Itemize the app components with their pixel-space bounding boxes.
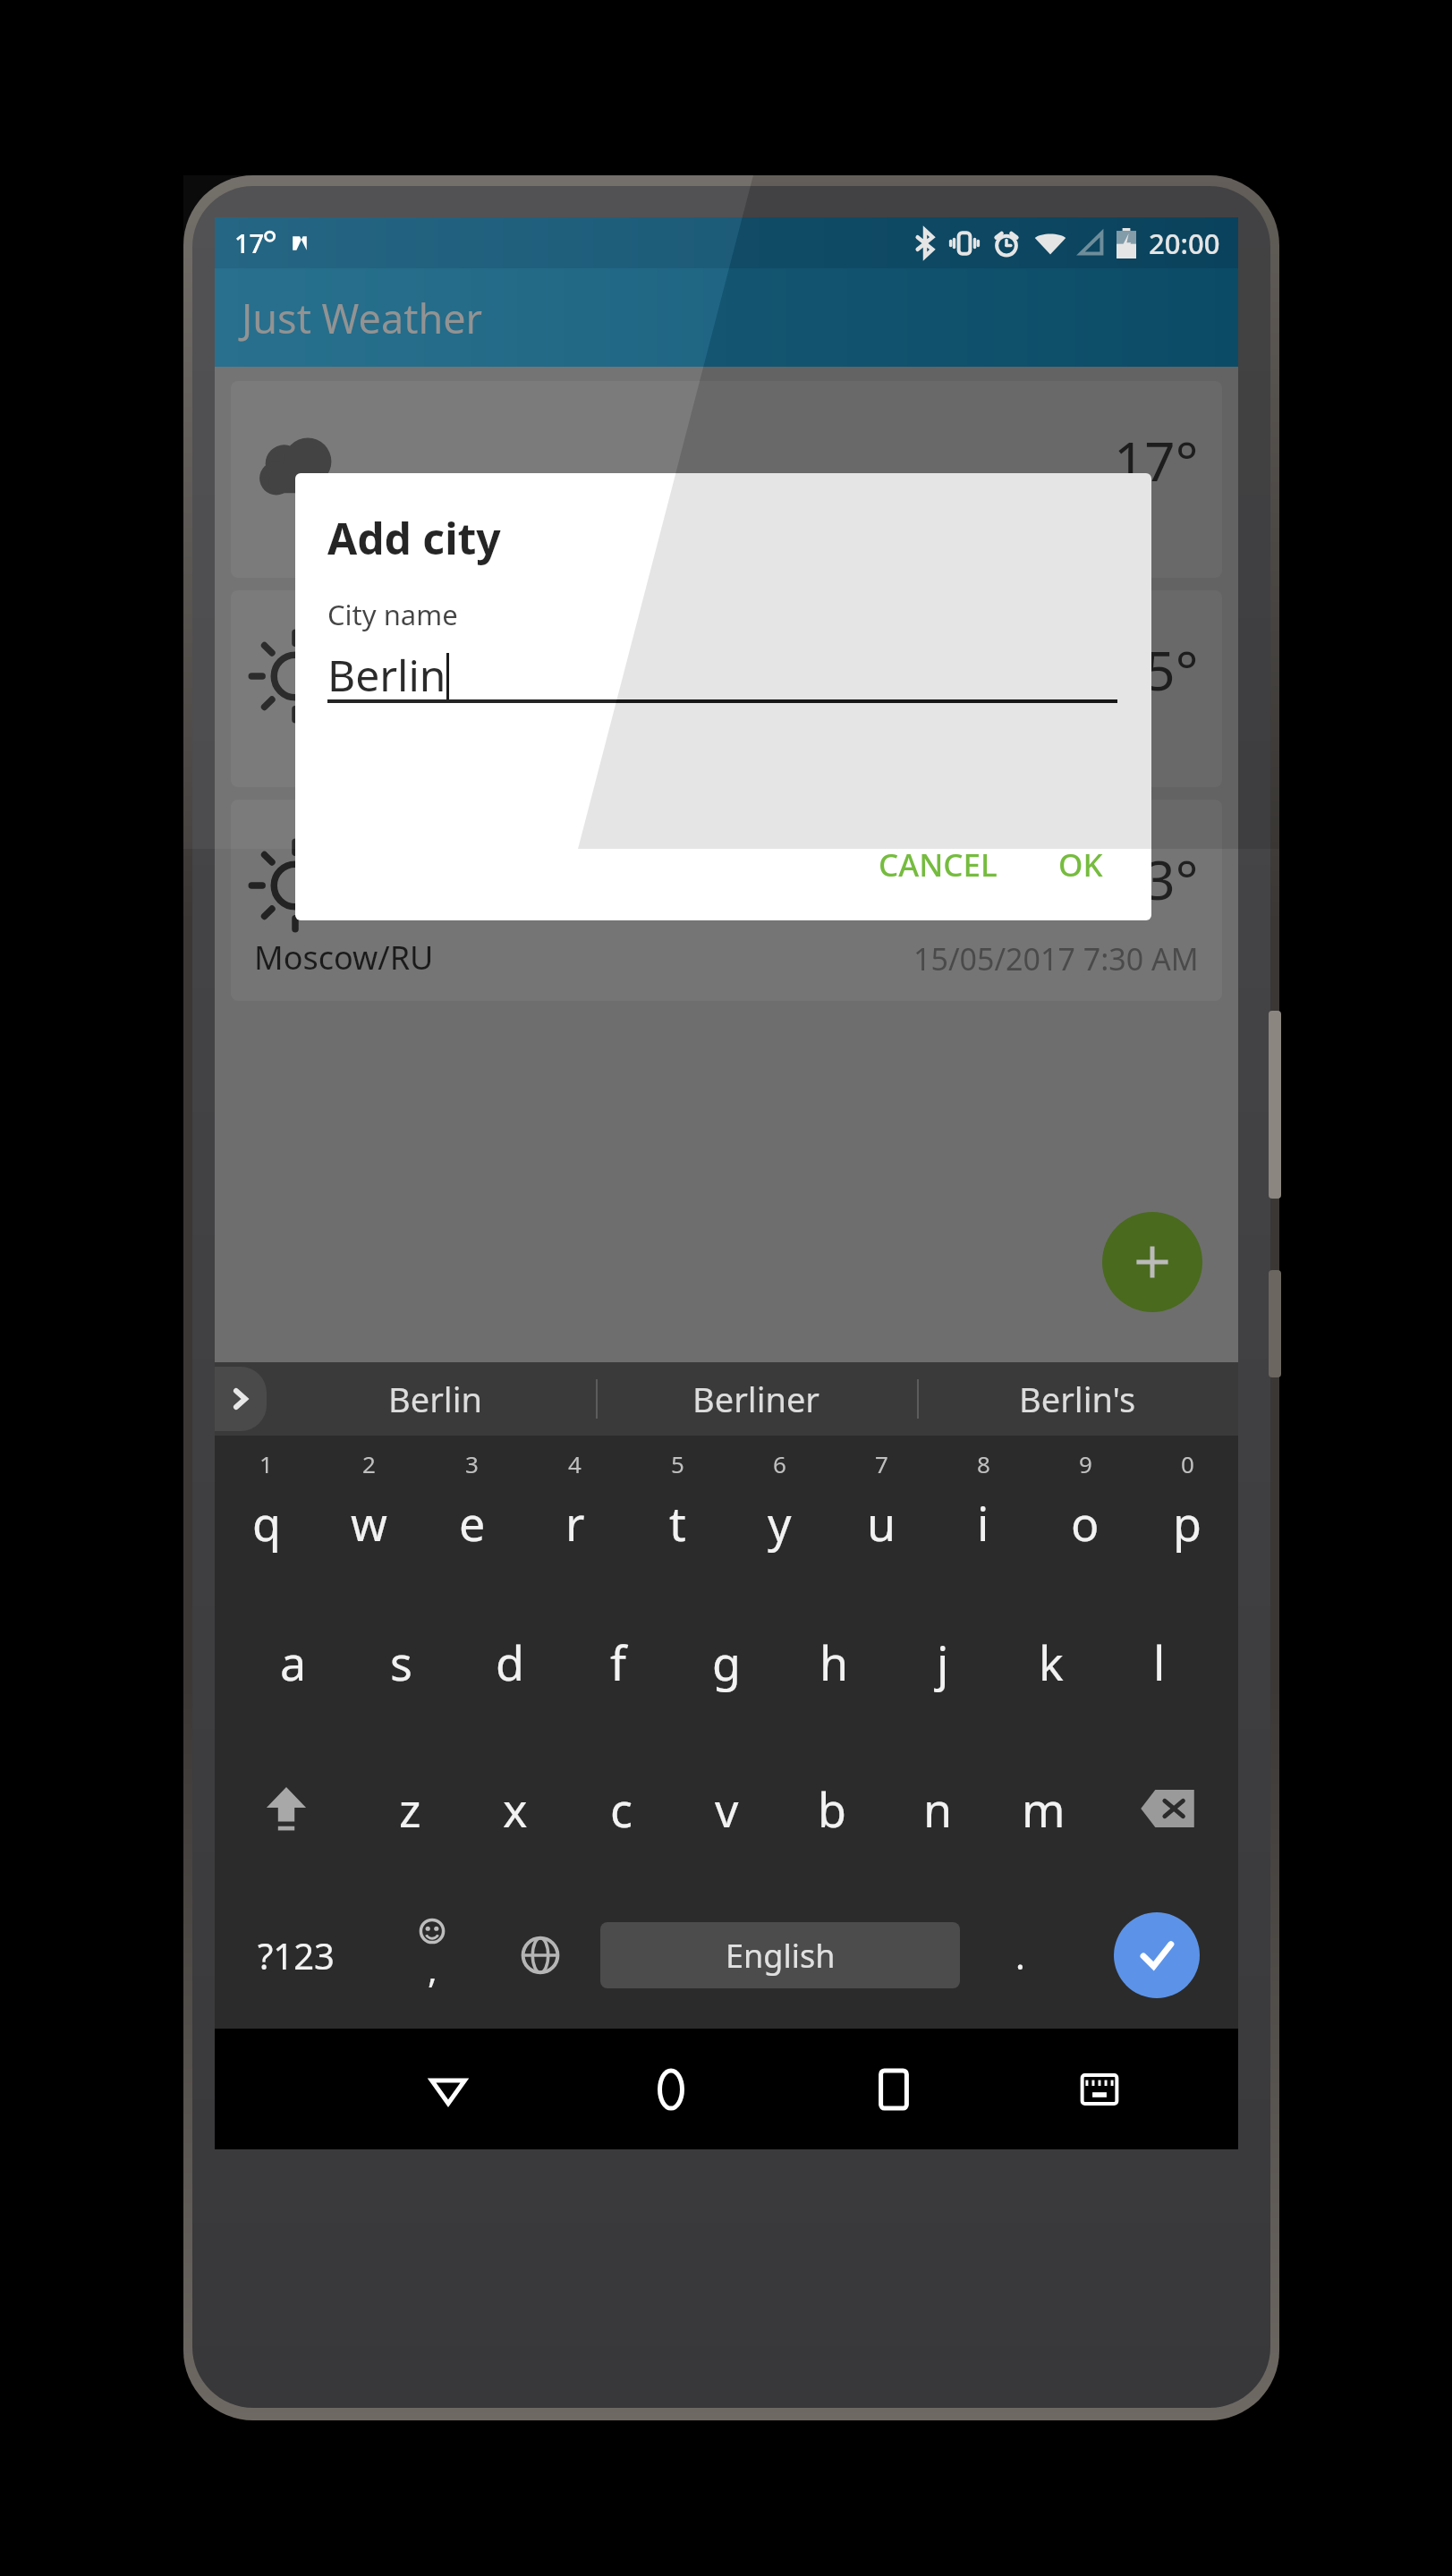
button[interactable]: 9 [1034,1441,1136,1589]
button[interactable]: n [885,1735,990,1882]
staticText: Add city [327,509,501,567]
staticText: Berlin [327,646,446,703]
button[interactable]: a [240,1589,347,1735]
button[interactable]: f [564,1589,672,1735]
staticText: e [459,1491,486,1555]
button[interactable]: 4 [523,1441,626,1589]
staticText: English [726,1934,836,1978]
button[interactable]: Home [559,2029,782,2149]
staticText: Berlin's [1019,1376,1136,1422]
staticText: 15° [1114,633,1199,707]
staticText: k [1039,1631,1064,1694]
button[interactable]: Add city [1102,1212,1202,1312]
button[interactable]: j [888,1589,997,1735]
staticText: f [610,1631,626,1694]
staticText: h [819,1631,849,1694]
staticText: Just Weather [242,291,483,345]
staticText: OK [1058,843,1103,886]
button[interactable]: 15° [231,590,1222,787]
staticText: t [669,1491,686,1555]
button[interactable]: z [357,1735,463,1882]
button[interactable]: 5 [626,1441,728,1589]
staticText: l [1153,1631,1166,1694]
button[interactable]: m [990,1735,1096,1882]
button[interactable]: Back [336,2029,559,2149]
staticText: p [1173,1491,1202,1555]
button[interactable]: OK [1042,833,1119,897]
staticText: 1 [259,1448,273,1479]
button[interactable]: Shift [215,1735,357,1882]
staticText: 5 [671,1448,684,1479]
button[interactable]: Berliner [596,1362,917,1436]
staticText: Moscow/RU [254,936,434,979]
staticText: 15/05/2017 7:30 AM [913,938,1199,979]
button[interactable]: 13° [231,800,1222,1001]
button[interactable]: Berlin [327,646,1117,703]
staticText: y [768,1491,792,1555]
staticText: s [390,1631,412,1694]
button[interactable]: Emoji and comma [378,1882,486,2029]
staticText: r [565,1491,585,1555]
button[interactable]: 0 [1136,1441,1238,1589]
button[interactable]: . [965,1882,1074,2029]
staticText: 17° [1114,424,1199,497]
staticText: n [923,1777,953,1841]
button[interactable]: 2 [318,1441,420,1589]
button[interactable]: b [779,1735,885,1882]
staticText: a [280,1631,307,1694]
staticText: 6 [773,1448,786,1479]
button[interactable]: s [347,1589,455,1735]
staticText: CANCEL [879,843,998,886]
button[interactable]: 6 [728,1441,830,1589]
button[interactable]: 8 [932,1441,1034,1589]
button[interactable]: Switch keyboard [1005,2029,1193,2149]
button[interactable]: Change language [486,1882,595,2029]
button[interactable]: v [674,1735,779,1882]
button[interactable]: Backspace [1096,1735,1238,1882]
staticText: 4 [568,1448,582,1479]
staticText: d [496,1631,524,1694]
staticText: u [867,1491,896,1555]
staticText: q [252,1491,281,1555]
button[interactable]: CANCEL [862,833,1014,897]
button[interactable]: h [780,1589,888,1735]
staticText: o [1071,1491,1100,1555]
staticText: c [610,1777,633,1841]
button[interactable]: Recent apps [782,2029,1005,2149]
staticText: 0 [1181,1448,1194,1479]
staticText: v [715,1777,739,1841]
button[interactable]: l [1105,1589,1213,1735]
button[interactable]: Berlin [274,1362,596,1436]
button[interactable]: g [672,1589,780,1735]
button[interactable]: k [997,1589,1105,1735]
button[interactable]: x [463,1735,568,1882]
button[interactable]: Berlin's [917,1362,1238,1436]
button[interactable]: 3 [420,1441,523,1589]
staticText: Berliner [692,1376,820,1422]
staticText: 20:00 [1149,225,1220,262]
button[interactable]: d [455,1589,564,1735]
staticText: ?123 [258,1931,335,1979]
button[interactable]: ?123 [215,1882,378,2029]
staticText: 17 [234,225,265,260]
button[interactable]: c [568,1735,674,1882]
staticText: Berlin [388,1376,482,1422]
button[interactable]: More suggestions [215,1367,267,1431]
staticText: , [428,1945,437,1993]
staticText: 8 [977,1448,990,1479]
staticText: 9 [1079,1448,1092,1479]
staticText: b [818,1777,846,1841]
button[interactable]: 17° [231,381,1222,578]
staticText: 3 [465,1448,479,1479]
button[interactable]: Done [1114,1912,1200,1998]
button[interactable]: English [600,1922,960,1988]
button[interactable]: 7 [830,1441,932,1589]
staticText: j [937,1631,949,1694]
staticText: m [1022,1777,1066,1841]
staticText: x [503,1777,528,1841]
staticText: . [1015,1931,1025,1979]
button[interactable]: 1 [215,1441,318,1589]
staticText: 7 [875,1448,888,1479]
staticText: z [399,1777,421,1841]
staticText: City name [327,596,458,633]
